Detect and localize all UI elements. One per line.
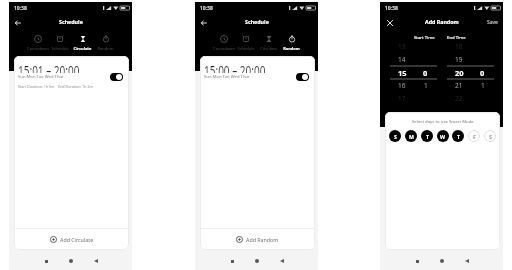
button[interactable]: Schedule bbox=[49, 31, 71, 51]
staticText: 20 bbox=[455, 68, 464, 78]
button[interactable]: Back bbox=[277, 256, 287, 266]
staticText: 13 bbox=[398, 42, 406, 51]
button[interactable]: Home bbox=[66, 256, 76, 266]
button[interactable]: Add Circulate bbox=[14, 229, 129, 250]
staticText: Add Random bbox=[246, 236, 279, 243]
button[interactable]: Recents bbox=[227, 256, 237, 266]
staticText: 18 bbox=[455, 42, 463, 51]
button[interactable]: Back bbox=[198, 17, 210, 29]
staticText: 10:38 bbox=[385, 5, 398, 12]
button[interactable]: T bbox=[421, 130, 433, 142]
staticText: Schedule bbox=[245, 18, 269, 25]
staticText: 15:01 – 20:00 bbox=[18, 61, 79, 73]
staticText: 15:00 – 20:00 bbox=[204, 61, 265, 73]
staticText: 0 bbox=[480, 68, 485, 78]
button[interactable]: Save bbox=[487, 19, 498, 26]
staticText: 16 bbox=[398, 81, 406, 90]
staticText: 10:38 bbox=[14, 5, 27, 12]
staticText: T bbox=[457, 133, 460, 140]
staticText: Countdown bbox=[27, 46, 49, 51]
button[interactable]: Enable schedule bbox=[110, 73, 123, 81]
staticText: Schedule bbox=[49, 46, 71, 51]
staticText: Start Duration: 1h 5m End Duration: 1h 2… bbox=[18, 84, 93, 89]
staticText: 0 bbox=[423, 68, 428, 78]
button[interactable]: Random bbox=[280, 31, 303, 51]
staticText: M bbox=[409, 133, 414, 140]
staticText: Select days to use Smart Mode bbox=[412, 118, 474, 124]
staticText: 17 bbox=[398, 94, 406, 103]
staticText: Start Time bbox=[414, 34, 435, 40]
button[interactable]: Countdown bbox=[27, 31, 49, 51]
button[interactable]: Random bbox=[94, 31, 117, 51]
staticText: 21 bbox=[455, 81, 463, 90]
staticText: Random bbox=[280, 46, 303, 51]
staticText: T bbox=[426, 133, 429, 140]
staticText: Add Circulate bbox=[60, 236, 94, 243]
button[interactable]: Schedule bbox=[235, 31, 257, 51]
button[interactable]: Countdown bbox=[213, 31, 235, 51]
staticText: 15 bbox=[398, 68, 407, 78]
staticText: W bbox=[440, 133, 446, 140]
button[interactable]: F bbox=[468, 130, 480, 142]
staticText: F bbox=[473, 133, 476, 140]
button[interactable]: Close bbox=[385, 18, 395, 28]
button[interactable]: M bbox=[405, 130, 417, 142]
button[interactable]: Back bbox=[462, 256, 472, 266]
staticText: S bbox=[489, 133, 492, 140]
button[interactable]: W bbox=[437, 130, 449, 142]
staticText: End Time bbox=[447, 34, 466, 40]
staticText: 1 bbox=[424, 81, 428, 90]
staticText: 1 bbox=[481, 81, 485, 90]
staticText: 14 bbox=[398, 55, 406, 64]
staticText: Add Random bbox=[425, 18, 459, 25]
staticText: 19 bbox=[455, 55, 463, 64]
button[interactable]: Back bbox=[91, 256, 101, 266]
button[interactable]: Recents bbox=[412, 256, 422, 266]
staticText: 22 bbox=[455, 94, 463, 103]
staticText: Random bbox=[94, 46, 117, 51]
button[interactable]: Circulate bbox=[71, 31, 94, 51]
button[interactable]: Home bbox=[252, 256, 262, 266]
staticText: Circulate bbox=[71, 46, 94, 51]
button[interactable]: 15:00 – 20:00 bbox=[200, 56, 315, 86]
staticText: Sun Mon Tue Wed Thur bbox=[18, 74, 64, 80]
button[interactable]: Back bbox=[12, 17, 24, 29]
staticText: Sun Mon Tue Wed Thur bbox=[204, 74, 250, 80]
staticText: Countdown bbox=[213, 46, 235, 51]
staticText: 10:38 bbox=[200, 5, 213, 12]
button[interactable]: Enable schedule bbox=[296, 73, 309, 81]
button[interactable]: Add Random bbox=[200, 229, 315, 250]
button[interactable]: Recents bbox=[41, 256, 51, 266]
button[interactable]: S bbox=[389, 130, 401, 142]
staticText: Circulate bbox=[257, 46, 280, 51]
button[interactable]: 15:01 – 20:00 bbox=[14, 56, 129, 94]
button[interactable]: S bbox=[484, 130, 496, 142]
staticText: S bbox=[394, 133, 397, 140]
button[interactable]: Home bbox=[437, 256, 447, 266]
button[interactable]: T bbox=[452, 130, 464, 142]
button[interactable]: Circulate bbox=[257, 31, 280, 51]
staticText: Schedule bbox=[59, 18, 83, 25]
staticText: Schedule bbox=[235, 46, 257, 51]
